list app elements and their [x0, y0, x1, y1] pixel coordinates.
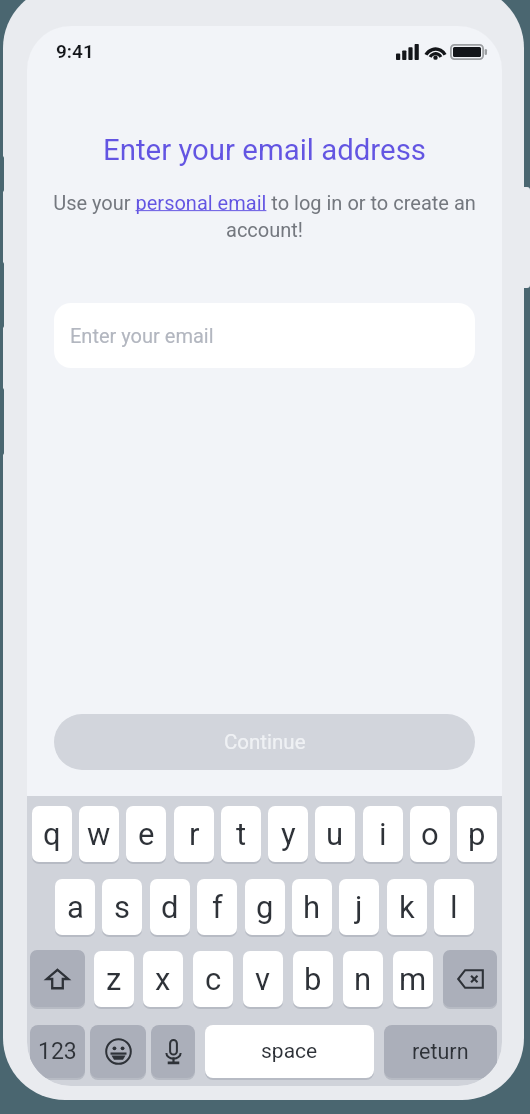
staticText: l	[450, 889, 458, 925]
button[interactable]: p	[457, 806, 497, 862]
button[interactable]: Enter your email	[54, 303, 475, 368]
button[interactable]: b	[293, 951, 333, 1007]
staticText: g	[256, 889, 274, 925]
button[interactable]: f	[197, 879, 237, 935]
staticText: z	[106, 961, 122, 997]
staticText: p	[468, 816, 486, 852]
button[interactable]: w	[79, 806, 119, 862]
button[interactable]: a	[55, 879, 95, 935]
button[interactable]: q	[32, 806, 72, 862]
staticText: x	[155, 961, 171, 997]
staticText: j	[355, 889, 363, 925]
staticText: o	[421, 816, 439, 852]
button[interactable]: Space	[205, 1025, 374, 1078]
staticText: k	[399, 889, 415, 925]
button[interactable]: i	[363, 806, 403, 862]
button[interactable]: Shift	[30, 950, 85, 1007]
button[interactable]: u	[315, 806, 355, 862]
staticText: Use your personal email to log in or to …	[52, 191, 477, 242]
staticText: t	[236, 816, 247, 852]
button[interactable]: Numbers	[30, 1025, 85, 1078]
staticText: y	[281, 816, 296, 852]
staticText: m	[399, 961, 427, 997]
staticText: s	[114, 889, 130, 925]
staticText: Continue	[224, 730, 306, 754]
button[interactable]: Voice input	[151, 1025, 195, 1078]
staticText: u	[326, 816, 344, 852]
button[interactable]: z	[94, 951, 134, 1007]
button[interactable]: y	[268, 806, 308, 862]
staticText: space	[261, 1039, 318, 1064]
button[interactable]: o	[410, 806, 450, 862]
button[interactable]: e	[126, 806, 166, 862]
staticText: d	[161, 889, 179, 925]
staticText: i	[379, 816, 387, 852]
button[interactable]: g	[245, 879, 285, 935]
staticText: 123	[38, 1038, 77, 1065]
button[interactable]: Backspace	[443, 950, 497, 1007]
button[interactable]: v	[243, 951, 283, 1007]
button[interactable]: c	[193, 951, 233, 1007]
button[interactable]: m	[393, 951, 433, 1007]
button[interactable]: n	[343, 951, 383, 1007]
button[interactable]: r	[174, 806, 214, 862]
staticText: c	[205, 961, 222, 997]
staticText: a	[67, 889, 84, 925]
staticText: b	[304, 961, 322, 997]
staticText: h	[303, 889, 321, 925]
button[interactable]: j	[339, 879, 379, 935]
staticText: Enter your email	[70, 324, 214, 347]
staticText: 9:41	[56, 40, 94, 62]
staticText: q	[43, 816, 61, 852]
staticText: r	[189, 816, 200, 852]
staticText: v	[255, 961, 271, 997]
button[interactable]: d	[150, 879, 190, 935]
button[interactable]: Continue	[54, 714, 475, 770]
button[interactable]: x	[143, 951, 183, 1007]
staticText: n	[354, 961, 372, 997]
button[interactable]: l	[434, 879, 474, 935]
staticText: return	[412, 1039, 469, 1064]
button[interactable]: t	[221, 806, 261, 862]
staticText: e	[138, 816, 155, 852]
staticText: f	[212, 889, 223, 925]
staticText: w	[87, 816, 111, 852]
button[interactable]: h	[292, 879, 332, 935]
button[interactable]: Return	[384, 1025, 497, 1078]
button[interactable]: s	[102, 879, 142, 935]
button[interactable]: Emoji	[90, 1025, 146, 1078]
staticText: Enter your email address	[27, 133, 502, 167]
button[interactable]: k	[387, 879, 427, 935]
